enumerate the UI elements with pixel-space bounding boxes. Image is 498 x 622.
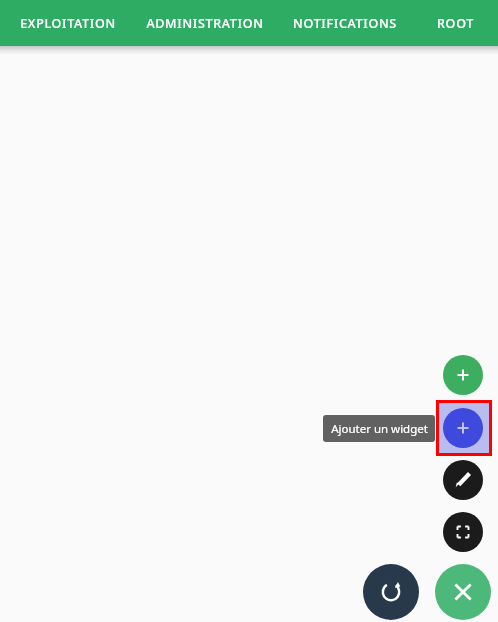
button[interactable]: EXPLOITATION <box>11 0 124 46</box>
button[interactable]: ADMINISTRATION <box>136 0 273 46</box>
button[interactable]: Ajouter un widget <box>443 408 483 448</box>
button[interactable]: Ajouter <box>443 355 483 395</box>
staticText: ADMINISTRATION <box>146 15 264 32</box>
button[interactable]: Rafraichir <box>363 564 419 620</box>
button[interactable]: Fermer <box>435 564 491 620</box>
staticText: NOTIFICATIONS <box>293 15 397 32</box>
button[interactable]: NOTIFICATIONS <box>280 0 409 46</box>
button[interactable]: Plein ecran <box>443 512 483 552</box>
button[interactable]: ROOT <box>427 0 484 46</box>
staticText: ROOT <box>437 15 474 32</box>
button[interactable]: Modifier <box>443 460 483 500</box>
staticText: EXPLOITATION <box>20 15 116 32</box>
staticText: Ajouter un widget <box>331 421 428 437</box>
